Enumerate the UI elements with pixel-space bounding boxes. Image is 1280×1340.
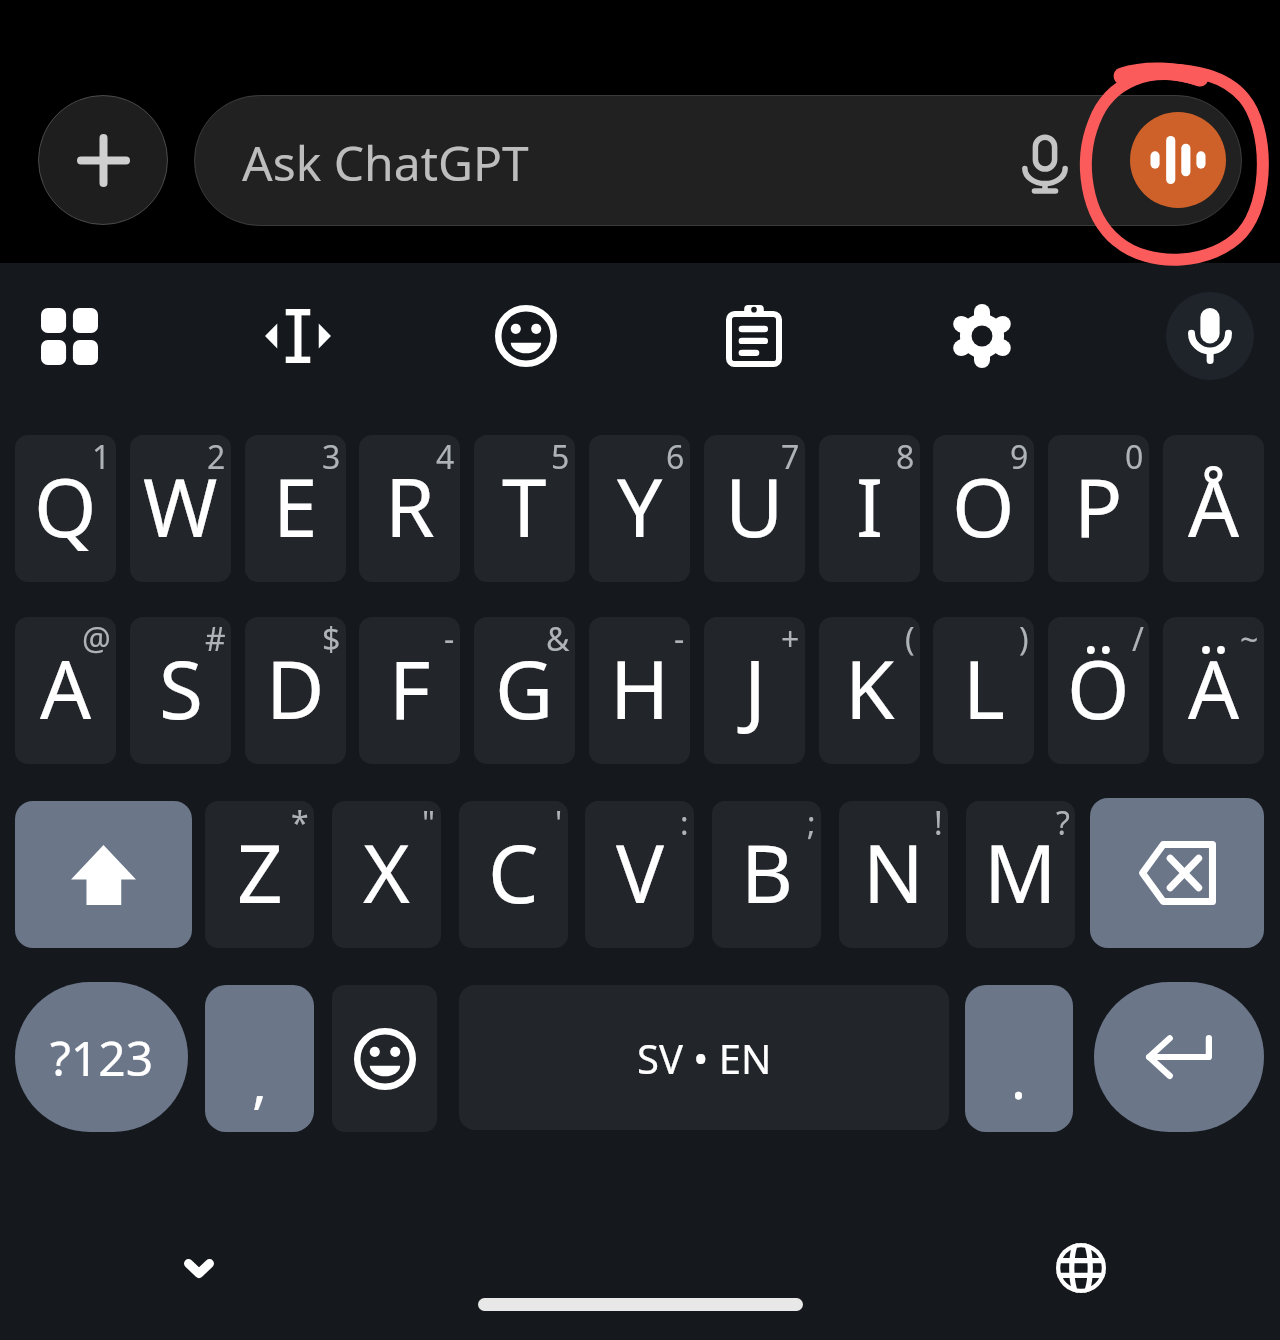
staticText: . (1011, 1039, 1027, 1115)
staticText: E (273, 451, 318, 560)
staticText: / (1132, 617, 1144, 661)
button[interactable]: Hide keyboard (155, 1224, 243, 1312)
staticText: ?123 (50, 1025, 154, 1090)
button[interactable]: U (704, 435, 805, 582)
button[interactable]: SV • EN (459, 985, 949, 1130)
staticText: Q (34, 451, 97, 560)
button[interactable]: Dictate (1005, 125, 1085, 205)
staticText: 0 (1125, 435, 1144, 479)
button[interactable]: Å (1163, 435, 1264, 582)
staticText: @ (82, 617, 111, 661)
button[interactable]: K (819, 617, 920, 764)
button[interactable]: Add attachment (38, 95, 168, 225)
staticText: # (205, 617, 226, 661)
staticText: Y (617, 451, 663, 560)
staticText: V (616, 817, 664, 926)
button[interactable]: C (459, 801, 568, 948)
button[interactable]: M (966, 801, 1075, 948)
button[interactable]: Change language (1037, 1224, 1125, 1312)
staticText: Z (237, 817, 283, 926)
button[interactable]: F (359, 617, 460, 764)
staticText: W (143, 451, 218, 560)
button[interactable]: L (933, 617, 1034, 764)
button[interactable]: D (245, 617, 346, 764)
staticText: & (546, 617, 570, 661)
staticText: C (488, 817, 539, 926)
button[interactable]: Shift (15, 801, 192, 948)
button[interactable]: H (589, 617, 690, 764)
button[interactable]: Z (205, 801, 314, 948)
staticText: M (984, 817, 1057, 926)
staticText: I (856, 451, 884, 560)
button[interactable]: O (933, 435, 1034, 582)
button[interactable]: A (15, 617, 116, 764)
button[interactable]: P (1048, 435, 1149, 582)
button[interactable]: Switch keyboard (25, 292, 113, 380)
staticText: K (845, 633, 895, 742)
button[interactable]: Voice input (1166, 292, 1254, 380)
staticText: - (674, 617, 685, 661)
staticText: X (363, 817, 410, 926)
button[interactable]: Voice mode (1130, 112, 1226, 208)
button[interactable]: Emoji (332, 985, 437, 1132)
staticText: ; (807, 801, 816, 845)
button[interactable]: Emoji (482, 292, 570, 380)
button[interactable]: Q (15, 435, 116, 582)
staticText: " (422, 801, 436, 845)
button[interactable]: Y (589, 435, 690, 582)
button[interactable]: N (839, 801, 948, 948)
staticText: SV • EN (637, 1031, 772, 1085)
staticText: ! (934, 801, 943, 845)
staticText: Ask ChatGPT (242, 130, 529, 195)
button[interactable]: R (359, 435, 460, 582)
button[interactable]: Clipboard (710, 292, 798, 380)
button[interactable]: Backspace (1090, 798, 1264, 948)
staticText: S (159, 633, 203, 742)
staticText: - (444, 617, 455, 661)
button[interactable]: Move cursor (254, 292, 342, 380)
staticText: D (266, 633, 325, 742)
staticText: ' (555, 801, 563, 845)
staticText: , (252, 1043, 268, 1119)
button[interactable]: T (474, 435, 575, 582)
staticText: 6 (666, 435, 685, 479)
staticText: 2 (207, 435, 226, 479)
staticText: 7 (781, 435, 800, 479)
staticText: 9 (1010, 435, 1029, 479)
button[interactable]: Ä (1163, 617, 1264, 764)
button[interactable]: Ask ChatGPT (194, 95, 1242, 226)
button[interactable]: Enter (1094, 982, 1264, 1132)
button[interactable]: I (819, 435, 920, 582)
button[interactable]: B (712, 801, 821, 948)
staticText: Ä (1188, 633, 1240, 742)
staticText: P (1074, 451, 1123, 560)
button[interactable]: X (332, 801, 441, 948)
button[interactable]: , (205, 985, 314, 1132)
staticText: G (495, 633, 554, 742)
button[interactable]: E (245, 435, 346, 582)
staticText: $ (322, 617, 341, 661)
staticText: A (40, 633, 92, 742)
staticText: R (385, 451, 435, 560)
button[interactable]: . (965, 985, 1073, 1132)
button[interactable]: V (585, 801, 694, 948)
button[interactable]: ?123 (15, 982, 188, 1132)
staticText: : (680, 801, 689, 845)
button[interactable]: J (704, 617, 805, 764)
staticText: B (741, 817, 793, 926)
button[interactable]: Ö (1048, 617, 1149, 764)
button[interactable]: Settings (938, 292, 1026, 380)
staticText: 8 (896, 435, 915, 479)
staticText: F (389, 633, 431, 742)
staticText: O (952, 451, 1015, 560)
button[interactable]: G (474, 617, 575, 764)
staticText: T (502, 451, 547, 560)
staticText: + (781, 617, 800, 661)
staticText: J (744, 633, 766, 742)
staticText: H (610, 633, 670, 742)
staticText: 1 (92, 435, 111, 479)
staticText: ) (1019, 617, 1029, 661)
button[interactable]: S (130, 617, 231, 764)
button[interactable]: W (130, 435, 231, 582)
staticText: 4 (436, 435, 455, 479)
